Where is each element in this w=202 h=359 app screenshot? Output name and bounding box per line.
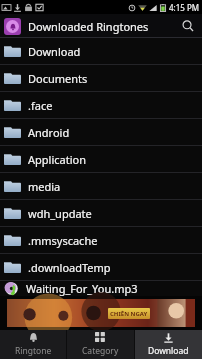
button[interactable]: Ringtone — [0, 330, 66, 359]
staticText: .downloadTemp — [28, 260, 111, 275]
button[interactable]: Search — [174, 14, 202, 38]
button[interactable]: Download — [135, 330, 202, 359]
staticText: media — [28, 179, 61, 194]
staticText: Documents — [28, 71, 88, 86]
button[interactable]: Waiting_For_You.mp3 — [0, 281, 202, 296]
staticText: Application — [28, 152, 86, 167]
button[interactable]: media — [0, 173, 202, 199]
staticText: 4:15 PM — [169, 2, 200, 13]
staticText: Android — [28, 125, 70, 140]
button[interactable]: Application — [0, 146, 202, 172]
staticText: .face — [28, 98, 53, 113]
staticText: Category — [82, 345, 119, 357]
button[interactable]: Documents — [0, 65, 202, 91]
staticText: Download — [148, 345, 189, 357]
staticText: CHIẾN NGAY — [110, 310, 148, 318]
staticText: Downloaded Ringtones — [28, 19, 149, 34]
button[interactable]: Download — [0, 38, 202, 64]
staticText: wdh_update — [28, 206, 92, 221]
button[interactable]: Advertisement — [0, 296, 202, 330]
button[interactable]: .downloadTemp — [0, 254, 202, 280]
button[interactable]: Category — [67, 330, 134, 359]
button[interactable]: Android — [0, 119, 202, 145]
staticText: .mmsyscache — [28, 233, 98, 248]
staticText: Ringtone — [15, 345, 52, 357]
button[interactable]: .face — [0, 92, 202, 118]
button[interactable]: wdh_update — [0, 200, 202, 226]
staticText: Waiting_For_You.mp3 — [26, 281, 138, 296]
staticText: Download — [28, 44, 81, 59]
button[interactable]: .mmsyscache — [0, 227, 202, 253]
